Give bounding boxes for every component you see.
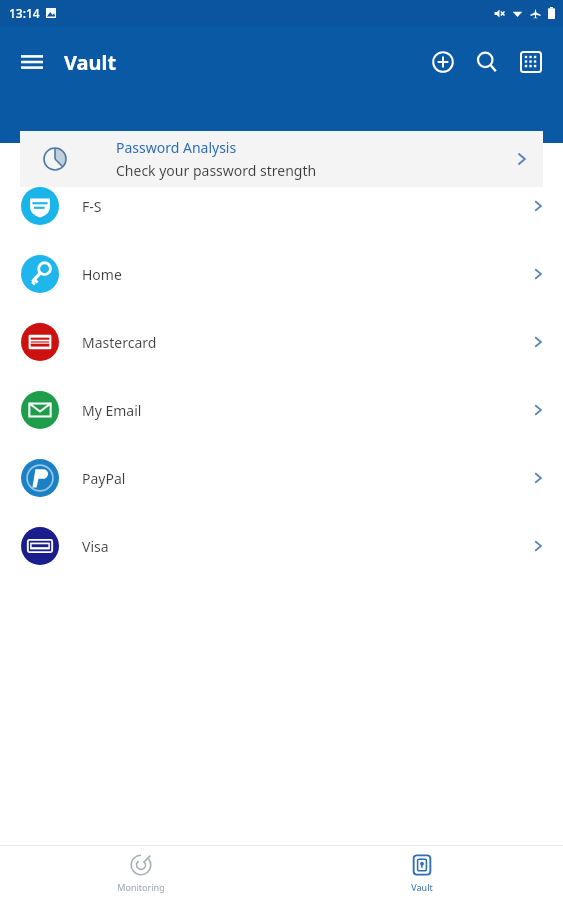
staticText: Home — [82, 265, 122, 284]
staticText: PayPal — [82, 469, 126, 488]
button[interactable]: PayPal — [0, 444, 563, 512]
button[interactable]: F-S — [0, 172, 563, 240]
button[interactable]: Password Analysis — [20, 131, 543, 187]
staticText: Check your password strength — [116, 161, 317, 180]
staticText: Monitoring — [117, 881, 165, 893]
button[interactable]: Search — [465, 40, 509, 84]
button[interactable]: Mastercard — [0, 308, 563, 376]
staticText: Vault — [411, 881, 433, 893]
button[interactable]: Menu — [14, 44, 50, 80]
staticText: 13:14 — [9, 5, 40, 21]
staticText: Vault — [64, 49, 117, 76]
staticText: My Email — [82, 401, 142, 420]
button[interactable]: Home — [0, 240, 563, 308]
button[interactable]: Monitoring — [81, 854, 201, 893]
staticText: F-S — [82, 197, 102, 216]
button[interactable]: Grid view — [509, 40, 553, 84]
button[interactable]: Add — [421, 40, 465, 84]
button[interactable]: Visa — [0, 512, 563, 580]
staticText: Password Analysis — [116, 138, 237, 157]
button[interactable]: Vault — [362, 854, 482, 893]
staticText: Visa — [82, 537, 109, 556]
staticText: Mastercard — [82, 333, 157, 352]
button[interactable]: My Email — [0, 376, 563, 444]
